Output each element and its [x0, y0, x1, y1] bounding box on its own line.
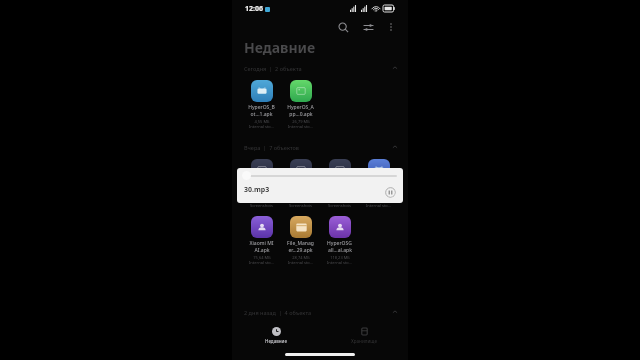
staticText: Xiaomi MI — [249, 240, 274, 247]
staticText: Internal sto... — [366, 203, 391, 208]
button[interactable]: Хранилище — [320, 322, 408, 348]
button[interactable]: HyperOSG — [320, 214, 359, 267]
staticText: er2...0.apk — [366, 190, 391, 197]
staticText: Internal sto... — [249, 124, 274, 129]
staticText: ot...1.apk — [250, 111, 273, 118]
button[interactable]: Вчера | 7 объектов — [232, 141, 408, 153]
button[interactable]: Сегодня | 2 объекта — [232, 62, 408, 74]
staticText: HyperOS_B — [248, 104, 275, 111]
button[interactable]: Сортировка — [358, 17, 378, 37]
staticText: Хранилище — [351, 338, 377, 344]
staticText: Screenshot — [248, 183, 275, 190]
staticText: 26,79 МБ — [292, 119, 310, 124]
staticText: File_Manag — [287, 240, 314, 247]
button[interactable]: Screenshot — [320, 157, 359, 210]
button[interactable]: 30.mp3 — [237, 168, 403, 203]
staticText: HyperOSG — [327, 240, 352, 247]
button[interactable]: File_Manag — [281, 214, 320, 267]
staticText: Internal sto... — [288, 260, 313, 265]
button[interactable]: Xiaomi MI — [242, 214, 281, 267]
staticText: _...dit.png — [250, 190, 274, 197]
staticText: 4,55 МБ — [254, 119, 270, 124]
staticText: Internal sto... — [327, 260, 352, 265]
button[interactable]: 2 дня назад | 4 объекта — [232, 306, 408, 318]
button[interactable]: total_weat — [359, 157, 398, 210]
staticText: Screenshots — [328, 203, 351, 208]
staticText: Screenshots — [250, 203, 273, 208]
staticText: 12:06 — [245, 4, 263, 14]
staticText: Internal sto... — [288, 124, 313, 129]
button[interactable]: Недавние — [232, 322, 320, 348]
staticText: pp...0.apk — [289, 111, 313, 118]
button[interactable]: HyperOS_B — [242, 78, 281, 131]
staticText: all...al.apk — [328, 247, 352, 254]
staticText: 75,64 МБ — [253, 255, 271, 260]
button[interactable]: HyperOS_A — [281, 78, 320, 131]
staticText: 30.mp3 — [244, 185, 270, 195]
staticText: Недавние — [244, 38, 316, 57]
staticText: 28,74 МБ — [292, 255, 310, 260]
staticText: Вчера | 7 объектов — [244, 144, 300, 151]
staticText: Недавние — [265, 338, 287, 344]
staticText: Internal sto... — [249, 260, 274, 265]
staticText: total_weat — [366, 183, 391, 190]
button[interactable]: Screenshot — [281, 157, 320, 210]
button[interactable]: Ещё — [382, 18, 400, 36]
staticText: 2 дня назад | 4 объекта — [244, 309, 312, 316]
staticText: HyperOS_A — [287, 104, 314, 111]
button[interactable]: Пауза — [384, 186, 396, 198]
staticText: AI.apk — [254, 247, 270, 254]
button[interactable]: Поиск — [333, 17, 353, 37]
staticText: Screenshots — [289, 203, 312, 208]
staticText: 118,23 МБ — [330, 255, 350, 260]
staticText: er...29.apk — [288, 247, 313, 254]
button[interactable]: Screenshot — [242, 157, 281, 210]
staticText: Сегодня | 2 объекта — [244, 65, 302, 72]
